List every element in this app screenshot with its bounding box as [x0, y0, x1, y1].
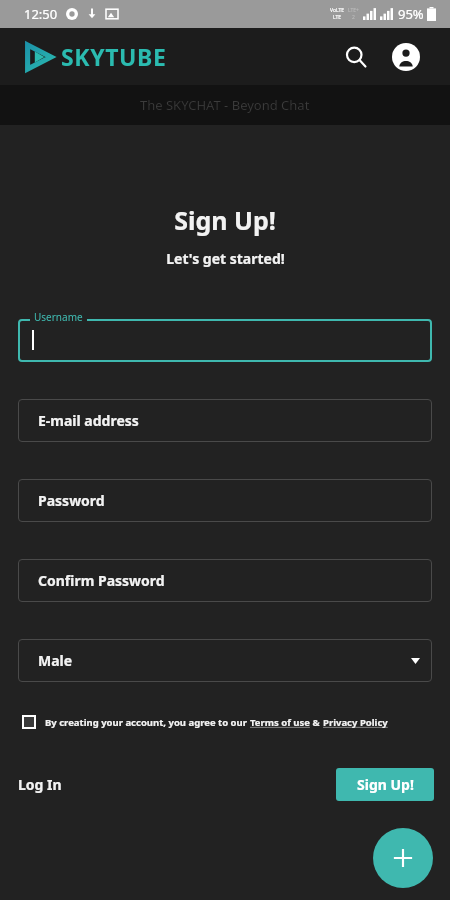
button[interactable]: Terms of use	[250, 716, 310, 729]
staticText: By creating your account, you agree to o…	[45, 716, 250, 729]
button[interactable]: Password	[18, 479, 432, 522]
button[interactable]: Privacy Policy	[323, 716, 388, 729]
staticText: SKYTUBE	[61, 41, 167, 72]
staticText: 12:50	[24, 5, 58, 23]
staticText: Username	[34, 310, 83, 324]
staticText: Male	[38, 651, 73, 670]
staticText: &	[310, 716, 323, 729]
staticText: 95%	[398, 5, 424, 23]
button[interactable]: Male	[18, 639, 432, 682]
button[interactable]: Add	[373, 828, 433, 888]
button[interactable]: Search	[336, 37, 376, 77]
button[interactable]: E-mail address	[18, 399, 432, 442]
staticText: Confirm Password	[38, 571, 165, 590]
button[interactable]: Sign Up!	[336, 768, 434, 801]
staticText: Log In	[18, 775, 62, 794]
staticText: Sign Up!	[357, 775, 414, 794]
staticText: Sign Up!	[174, 203, 276, 237]
button[interactable]: Username	[18, 310, 432, 362]
button[interactable]: Log In	[8, 767, 72, 802]
button[interactable]: Confirm Password	[18, 559, 432, 602]
button[interactable]: The SKYCHAT - Beyond Chat	[0, 85, 450, 125]
staticText: Password	[38, 491, 105, 510]
staticText: 2	[352, 14, 355, 21]
button[interactable]: Account	[386, 37, 426, 77]
staticText: E-mail address	[38, 411, 139, 430]
staticText: Let's get started!	[166, 249, 285, 268]
button[interactable]: By creating your account, you agree to o…	[22, 715, 438, 729]
staticText: LTE	[333, 14, 342, 21]
staticText: VoLTE	[330, 7, 345, 14]
staticText: The SKYCHAT - Beyond Chat	[140, 96, 310, 114]
staticText: LTE+	[348, 7, 359, 14]
